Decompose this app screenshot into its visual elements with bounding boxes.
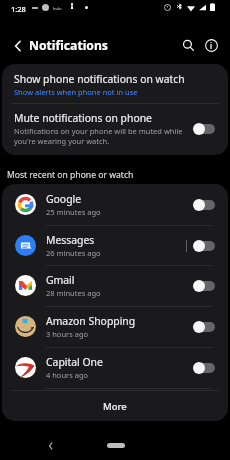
button[interactable]: Search	[178, 35, 199, 56]
button[interactable]: Back	[7, 35, 28, 56]
staticText: More	[103, 400, 127, 413]
staticText: Notifications on your phone will be mute…	[14, 126, 190, 146]
button[interactable]: Back	[40, 435, 61, 456]
staticText: Messages	[46, 233, 95, 247]
staticText: Capital One	[46, 355, 103, 369]
button[interactable]: Toggle	[193, 361, 215, 374]
staticText: Most recent on phone or watch	[7, 169, 134, 181]
button[interactable]: Toggle	[193, 239, 215, 252]
staticText: i	[210, 40, 213, 51]
staticText: 25 minutes ago	[46, 207, 101, 217]
button[interactable]: More	[2, 391, 228, 421]
button[interactable]: Home	[107, 443, 125, 448]
button[interactable]: Capital One	[2, 347, 228, 388]
staticText: Show alerts when phone not in use	[14, 87, 138, 97]
staticText: hulu	[53, 6, 62, 11]
staticText: 26 minutes ago	[46, 248, 101, 258]
button[interactable]: Google	[2, 184, 228, 225]
button[interactable]: Gmail	[2, 265, 228, 306]
staticText: 4 hours ago	[46, 370, 89, 380]
staticText: 3 hours ago	[46, 329, 89, 339]
button[interactable]: Toggle	[193, 122, 215, 135]
button[interactable]: Amazon Shopping	[2, 306, 228, 347]
button[interactable]: Mute notifications on phone	[2, 104, 228, 155]
staticText: Mute notifications on phone	[14, 111, 152, 125]
staticText: 28 minutes ago	[46, 288, 101, 298]
button[interactable]: Messages	[2, 225, 228, 266]
staticText: Show phone notifications on watch	[14, 72, 185, 86]
button[interactable]: Toggle	[193, 198, 215, 211]
staticText: Google	[46, 192, 82, 206]
button[interactable]: Toggle	[193, 279, 215, 292]
button[interactable]: Info	[201, 35, 222, 56]
staticText: Notifications	[29, 37, 108, 54]
button[interactable]: Toggle	[193, 320, 215, 333]
staticText: 1:28	[11, 4, 26, 14]
staticText: Gmail	[46, 273, 75, 287]
staticText: Amazon Shopping	[46, 314, 136, 328]
button[interactable]: Show phone notifications on watch	[2, 64, 228, 103]
